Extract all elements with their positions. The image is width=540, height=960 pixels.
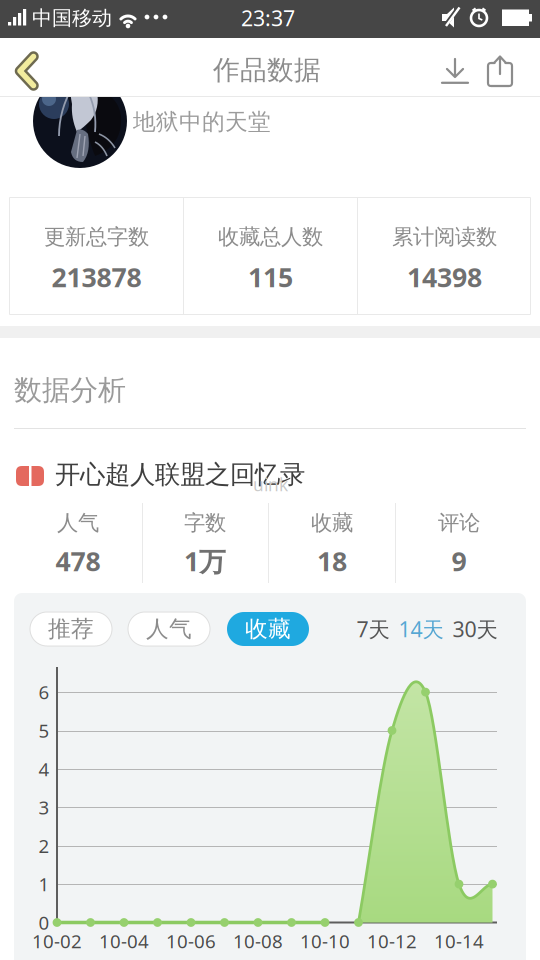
staticText: 10-02: [32, 929, 82, 953]
staticText: 作品数据: [213, 54, 321, 86]
staticText: uink: [253, 473, 288, 496]
staticText: 1万: [184, 543, 226, 579]
staticText: 30天: [452, 615, 497, 643]
staticText: 地狱中的天堂: [133, 108, 271, 136]
staticText: 0: [38, 910, 49, 935]
staticText: 字数: [184, 510, 226, 536]
staticText: 23:37: [241, 4, 295, 32]
staticText: 10-14: [434, 929, 484, 953]
button[interactable]: 收藏: [227, 612, 309, 646]
staticText: 9: [451, 543, 466, 579]
staticText: 6: [38, 680, 49, 704]
staticText: 7天: [356, 615, 389, 643]
staticText: 14天: [398, 615, 443, 643]
staticText: 评论: [438, 510, 480, 536]
staticText: 推荐: [48, 615, 94, 643]
staticText: 2: [38, 833, 49, 858]
staticText: 115: [248, 259, 293, 295]
button[interactable]: 7天: [356, 615, 389, 643]
staticText: 10-08: [233, 929, 283, 953]
button[interactable]: 14天: [398, 615, 443, 643]
button[interactable]: Download: [440, 56, 470, 86]
staticText: 5: [38, 718, 49, 743]
staticText: 213878: [51, 259, 141, 295]
staticText: 收藏总人数: [218, 224, 323, 250]
staticText: 10-10: [300, 929, 350, 953]
staticText: 14398: [407, 259, 482, 295]
staticText: 更新总字数: [44, 224, 149, 250]
staticText: 中国移动: [32, 6, 112, 30]
staticText: 18: [317, 543, 347, 579]
staticText: 收藏: [311, 510, 353, 536]
staticText: 开心超人联盟之回忆录: [55, 459, 305, 490]
staticText: 人气: [146, 615, 192, 643]
staticText: 10-04: [99, 929, 149, 953]
staticText: 累计阅读数: [392, 224, 497, 250]
staticText: 1: [38, 872, 49, 896]
staticText: 人气: [57, 510, 99, 536]
button[interactable]: Share: [484, 55, 516, 89]
staticText: 10-12: [367, 929, 417, 953]
button[interactable]: 人气: [128, 612, 210, 646]
button[interactable]: 推荐: [30, 612, 112, 646]
staticText: 478: [55, 543, 100, 579]
button[interactable]: Back: [0, 38, 56, 97]
staticText: 3: [38, 795, 49, 820]
staticText: 4: [38, 756, 49, 781]
staticText: 收藏: [245, 615, 291, 643]
staticText: 数据分析: [14, 373, 126, 407]
button[interactable]: 30天: [452, 615, 497, 643]
staticText: 10-06: [166, 929, 216, 953]
